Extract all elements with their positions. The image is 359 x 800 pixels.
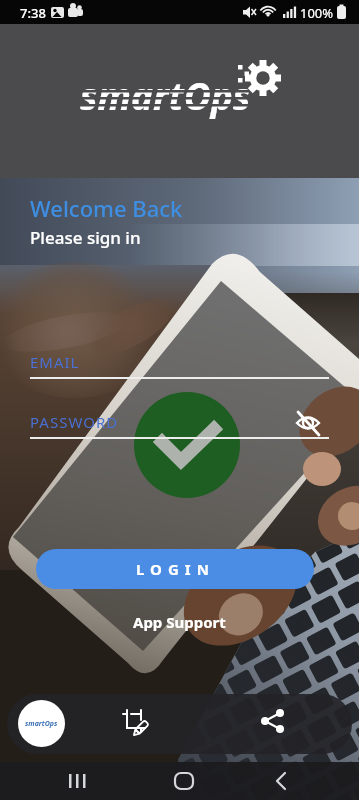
button[interactable]: EMAIL [30, 352, 329, 380]
staticText: App Support [133, 612, 226, 632]
button[interactable]: PASSWORD [30, 412, 329, 440]
staticText: smartOps [80, 70, 251, 120]
staticText: 100% [300, 4, 334, 22]
staticText: Welcome Back [30, 193, 183, 223]
staticText: 7:38 [20, 4, 46, 22]
button[interactable] [292, 408, 324, 440]
staticText: smartOps [25, 719, 58, 729]
button[interactable]: smartOps [18, 700, 65, 747]
button[interactable]: LOGIN [36, 549, 314, 589]
button[interactable] [60, 766, 96, 796]
button[interactable] [119, 706, 155, 742]
staticText: EMAIL [30, 352, 80, 372]
button[interactable]: App Support [129, 608, 230, 636]
staticText: LOGIN [136, 559, 215, 579]
button[interactable] [262, 766, 298, 796]
button[interactable] [255, 706, 291, 742]
staticText: Please sign in [30, 226, 141, 249]
staticText: PASSWORD [30, 412, 119, 432]
button[interactable] [166, 766, 202, 796]
